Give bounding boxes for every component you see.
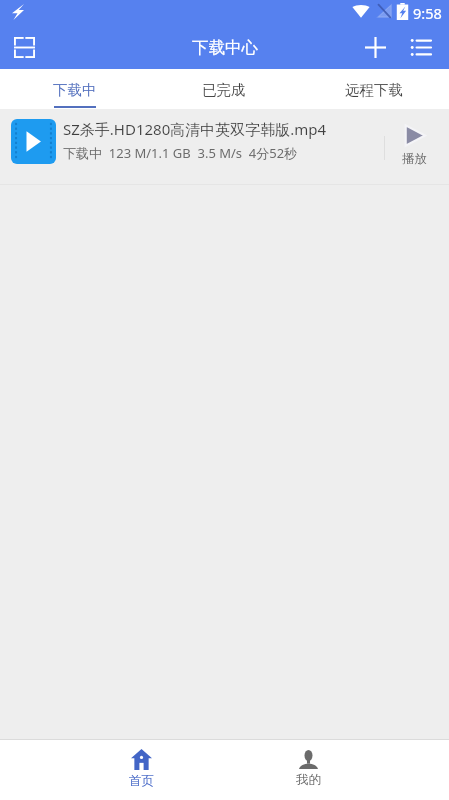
staticText: 下载中 123 M/1.1 GB 3.5 M/s 4分52秒 — [63, 144, 298, 162]
button[interactable]: Scan — [6, 29, 42, 65]
staticText: 我的 — [296, 772, 321, 788]
button[interactable]: 我的 — [266, 739, 350, 799]
button[interactable]: 已完成 — [149, 69, 299, 109]
staticText: 9:58 — [413, 3, 442, 23]
staticText: 播放 — [402, 151, 427, 167]
button[interactable]: 播放 — [385, 109, 443, 175]
staticText: SZ杀手.HD1280高清中英双字韩版.mp4 — [63, 119, 327, 139]
staticText: 下载中 — [53, 81, 97, 99]
button[interactable]: 首页 — [99, 739, 183, 799]
button[interactable]: SZ杀手.HD1280高清中英双字韩版.mp4 — [0, 109, 449, 184]
staticText: 下载中心 — [192, 37, 258, 58]
button[interactable]: 远程下载 — [299, 69, 449, 109]
button[interactable]: 下载中 — [0, 69, 149, 109]
button[interactable]: Add — [357, 25, 393, 69]
button[interactable]: Task list — [403, 25, 439, 69]
staticText: 远程下载 — [345, 81, 403, 99]
staticText: 已完成 — [202, 81, 246, 99]
staticText: 首页 — [129, 773, 154, 789]
